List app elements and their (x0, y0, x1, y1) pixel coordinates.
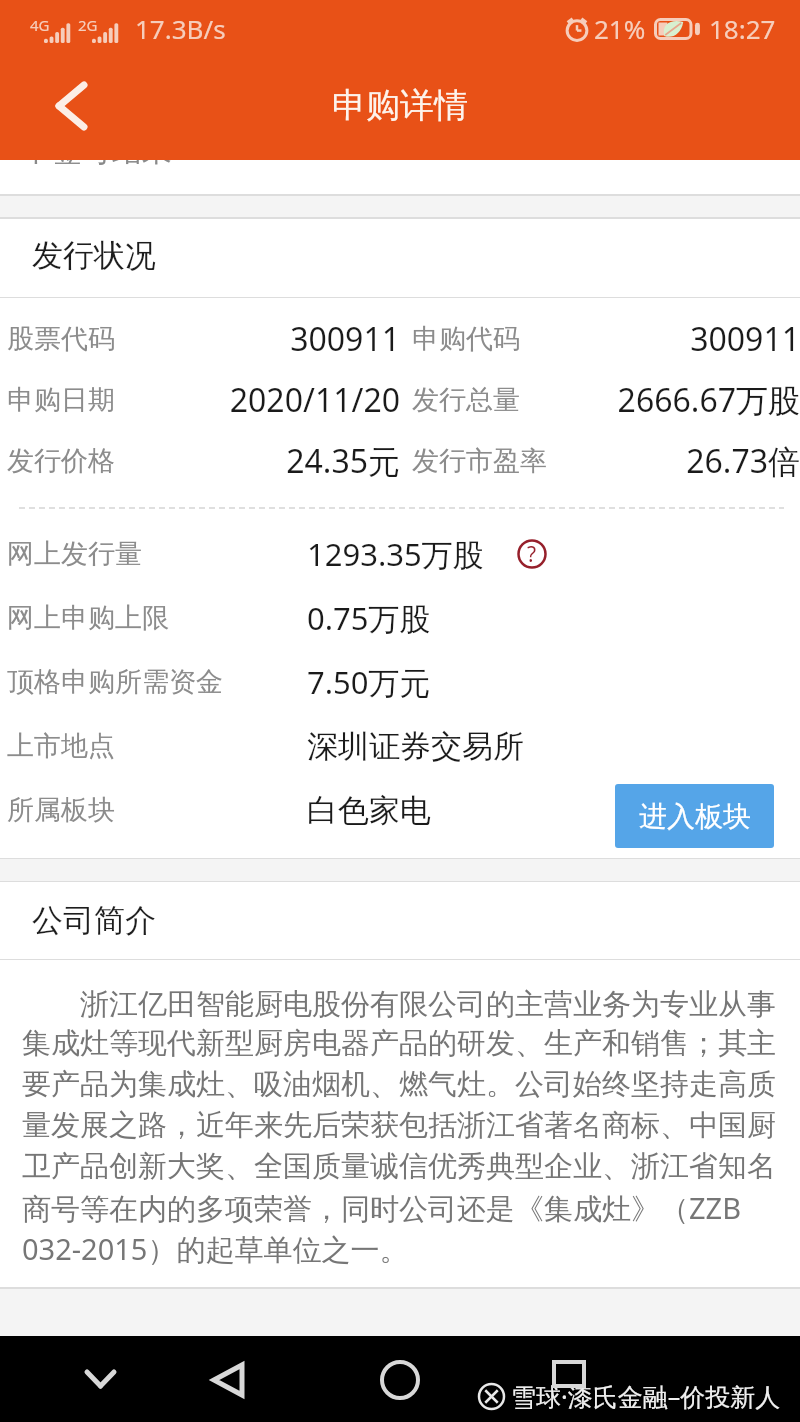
staticText: 量发展之路，近年来先后荣获包括浙江省著名商标、中国厨 (22, 1107, 776, 1144)
staticText: 发行价格 (7, 444, 115, 478)
button[interactable]: Back (26, 61, 116, 151)
button[interactable]: Hide keyboard (70, 1349, 130, 1409)
staticText: 网上申购上限 (7, 601, 169, 635)
staticText: 21% (594, 11, 646, 46)
staticText: 上市地点 (7, 729, 115, 763)
staticText: 2666.67万股 (617, 378, 800, 422)
button[interactable]: Back (198, 1350, 258, 1410)
staticText: 顶格申购所需资金 (7, 665, 223, 699)
staticText: 浙江亿田智能厨电股份有限公司的主营业务为专业从事 (22, 983, 776, 1023)
staticText: 公司简介 (32, 901, 156, 940)
staticText: 2G (78, 15, 98, 35)
staticText: ? (527, 540, 537, 569)
staticText: 24.35元 (286, 439, 400, 483)
staticText: 商号等在内的多项荣誉，同时公司还是《集成灶》（ZZB (22, 1188, 742, 1228)
staticText: 发行市盈率 (412, 444, 547, 478)
staticText: 所属板块 (7, 793, 115, 827)
staticText: 深圳证券交易所 (307, 727, 524, 766)
staticText: 雪球·漆氏金融–价投新人 (511, 1379, 781, 1413)
staticText: 发行总量 (412, 383, 520, 417)
button[interactable]: Home (370, 1350, 430, 1410)
staticText: 中签号结果 (22, 160, 172, 166)
staticText: 申购详情 (332, 84, 468, 127)
staticText: 2020/11/20 (229, 378, 400, 422)
staticText: 申购日期 (7, 383, 115, 417)
staticText: 300911 (290, 317, 400, 361)
staticText: 卫产品创新大奖、全国质量诚信优秀典型企业、浙江省知名 (22, 1148, 776, 1185)
button[interactable]: 进入板块 (615, 784, 774, 848)
button[interactable]: Help (515, 537, 549, 571)
staticText: 股票代码 (7, 322, 115, 356)
staticText: 032-2015）的起草单位之一。 (22, 1229, 409, 1269)
staticText: 1293.35万股 (307, 533, 484, 575)
staticText: 26.73倍 (686, 439, 800, 483)
staticText: 4G (30, 15, 50, 35)
staticText: 网上发行量 (7, 537, 142, 571)
staticText: 7.50万元 (307, 661, 431, 703)
staticText: 申购代码 (412, 322, 520, 356)
staticText: 发行状况 (32, 236, 156, 275)
staticText: 集成灶等现代新型厨房电器产品的研发、生产和销售；其主 (22, 1025, 776, 1062)
button[interactable]: Recent apps (539, 1344, 599, 1404)
staticText: 17.3B/s (135, 11, 226, 46)
staticText: 300911 (690, 317, 800, 361)
staticText: 18:27 (709, 11, 776, 46)
staticText: 要产品为集成灶、吸油烟机、燃气灶。公司始终坚持走高质 (22, 1066, 776, 1103)
staticText: 白色家电 (307, 791, 431, 830)
staticText: 0.75万股 (307, 597, 431, 639)
staticText: 进入板块 (639, 799, 751, 834)
